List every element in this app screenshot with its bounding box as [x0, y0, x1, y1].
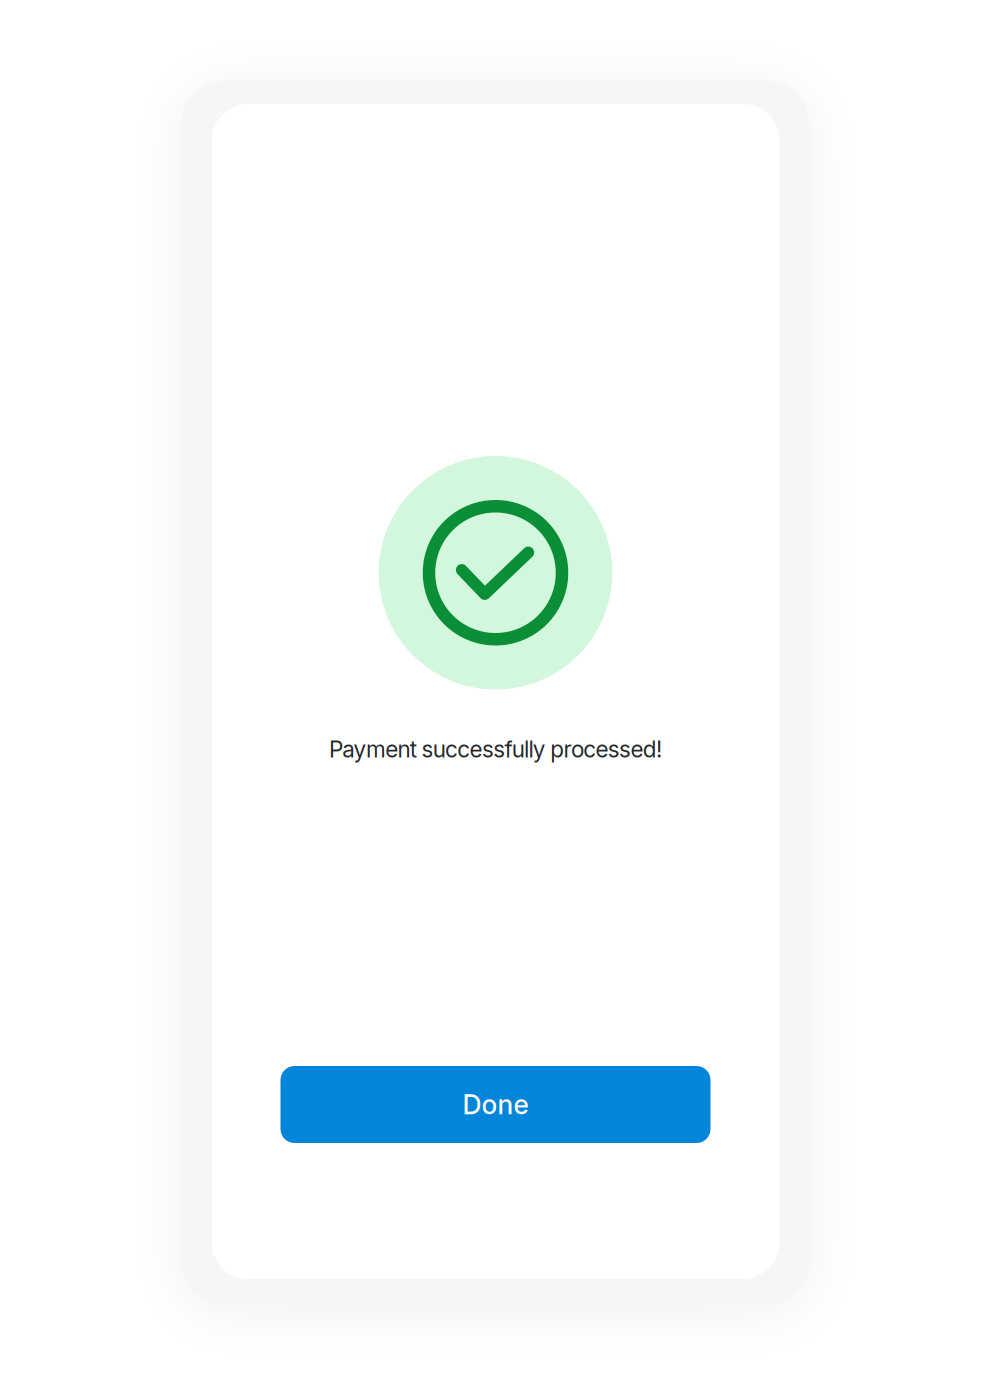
- staticText: Payment successfully processed!: [329, 735, 662, 763]
- button[interactable]: Done: [280, 1066, 710, 1143]
- staticText: Done: [462, 1088, 528, 1121]
